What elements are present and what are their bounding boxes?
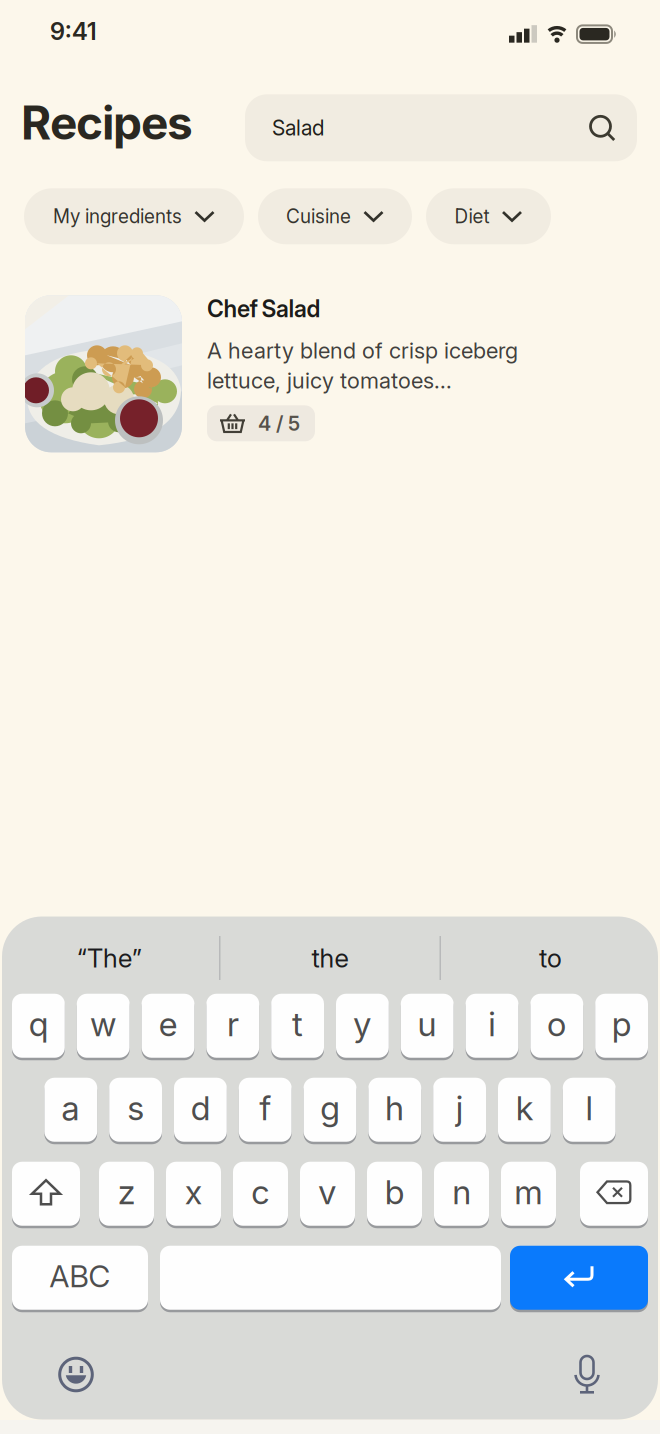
staticText: m xyxy=(514,1173,543,1212)
button[interactable]: ABC xyxy=(12,1245,148,1311)
button[interactable]: My ingredients xyxy=(24,188,244,244)
staticText: o xyxy=(547,1005,567,1044)
staticText: to xyxy=(539,943,562,973)
staticText: l xyxy=(585,1089,593,1128)
staticText: Chef Salad xyxy=(207,295,320,322)
staticText: t xyxy=(292,1005,303,1044)
staticText: b xyxy=(384,1173,404,1212)
button[interactable]: t xyxy=(271,993,324,1059)
button[interactable]: r xyxy=(206,993,259,1059)
staticText: i xyxy=(488,1005,496,1044)
button[interactable]: Return xyxy=(510,1245,648,1311)
staticText: the xyxy=(311,943,348,973)
button[interactable]: d xyxy=(174,1077,227,1143)
button[interactable]: p xyxy=(595,993,648,1059)
staticText: lettuce, juicy tomatoes... xyxy=(207,367,452,393)
button[interactable]: q xyxy=(12,993,65,1059)
button[interactable]: z xyxy=(99,1161,154,1227)
staticText: 4 / 5 xyxy=(258,412,300,435)
button[interactable]: Diet xyxy=(426,188,551,244)
staticText: ABC xyxy=(49,1259,110,1294)
staticText: z xyxy=(117,1173,135,1212)
staticText: j xyxy=(456,1089,464,1128)
button[interactable]: g xyxy=(304,1077,356,1143)
button[interactable]: o xyxy=(530,993,583,1059)
staticText: e xyxy=(158,1005,177,1044)
staticText: u xyxy=(417,1005,437,1044)
staticText: n xyxy=(452,1173,471,1212)
staticText: Cuisine xyxy=(286,205,351,227)
staticText: d xyxy=(190,1089,210,1128)
staticText: p xyxy=(612,1005,632,1044)
staticText: k xyxy=(515,1089,533,1128)
staticText: Diet xyxy=(454,205,489,227)
staticText: h xyxy=(385,1089,405,1128)
staticText: s xyxy=(127,1089,144,1128)
staticText: Recipes xyxy=(21,96,193,150)
button[interactable]: b xyxy=(367,1161,422,1227)
button[interactable]: n xyxy=(434,1161,489,1227)
staticText: g xyxy=(320,1089,340,1128)
button[interactable]: the xyxy=(220,930,439,986)
button[interactable]: w xyxy=(77,993,130,1059)
button[interactable]: Shift xyxy=(12,1161,80,1227)
button[interactable]: k xyxy=(498,1077,551,1143)
button[interactable]: a xyxy=(44,1077,97,1143)
staticText: 9:41 xyxy=(50,17,97,45)
staticText: v xyxy=(318,1173,337,1212)
button[interactable]: s xyxy=(109,1077,162,1143)
button[interactable]: m xyxy=(501,1161,556,1227)
staticText: “The” xyxy=(77,943,142,973)
button[interactable]: Space xyxy=(160,1245,501,1311)
button[interactable]: y xyxy=(336,993,389,1059)
button[interactable]: “The” xyxy=(0,930,219,986)
staticText: w xyxy=(90,1005,117,1044)
staticText: A hearty blend of crisp iceberg xyxy=(207,337,518,363)
staticText: r xyxy=(227,1005,239,1044)
button[interactable]: i xyxy=(466,993,518,1059)
button[interactable]: Delete xyxy=(580,1161,648,1227)
button[interactable]: Dictation xyxy=(572,1355,602,1394)
button[interactable]: j xyxy=(433,1077,486,1143)
button[interactable]: l xyxy=(563,1077,616,1143)
button[interactable]: h xyxy=(368,1077,421,1143)
button[interactable]: x xyxy=(166,1161,221,1227)
staticText: c xyxy=(251,1173,270,1212)
button[interactable]: v xyxy=(300,1161,355,1227)
button[interactable]: Search xyxy=(245,94,637,161)
staticText: x xyxy=(184,1173,202,1212)
staticText: q xyxy=(28,1005,48,1044)
button[interactable]: to xyxy=(441,930,660,986)
staticText: Salad xyxy=(272,115,324,140)
button[interactable]: f xyxy=(239,1077,292,1143)
staticText: My ingredients xyxy=(53,205,182,227)
staticText: f xyxy=(259,1089,271,1128)
button[interactable]: Emoji xyxy=(58,1356,94,1392)
button[interactable]: c xyxy=(233,1161,288,1227)
button[interactable]: Chef Salad xyxy=(0,295,660,452)
button[interactable]: e xyxy=(142,993,194,1059)
button[interactable]: u xyxy=(401,993,454,1059)
staticText: a xyxy=(61,1089,80,1128)
staticText: y xyxy=(353,1005,372,1044)
button[interactable]: Cuisine xyxy=(258,188,412,244)
